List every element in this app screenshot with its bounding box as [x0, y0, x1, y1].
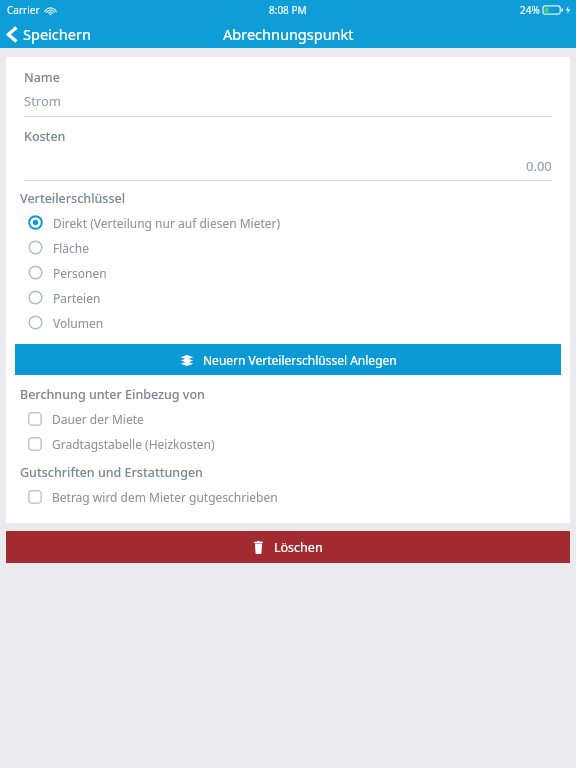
button[interactable]: Gradtagstabelle (Heizkosten) — [6, 431, 570, 456]
button[interactable]: Speichern — [0, 20, 101, 48]
staticText: Verteilerschlüssel — [20, 190, 126, 207]
staticText: Löschen — [274, 539, 323, 556]
staticText: Dauer der Miete — [52, 411, 144, 427]
button[interactable]: Löschen — [6, 531, 570, 563]
button[interactable]: 0.00 — [6, 157, 570, 175]
staticText: Direkt (Verteilung nur auf diesen Mieter… — [53, 215, 281, 231]
staticText: Speichern — [23, 24, 91, 44]
staticText: Betrag wird dem Mieter gutgeschrieben — [52, 489, 278, 505]
staticText: 24% — [520, 3, 540, 17]
button[interactable]: Betrag wird dem Mieter gutgeschrieben — [6, 484, 570, 509]
button[interactable]: Fläche — [6, 235, 570, 260]
button[interactable]: Volumen — [6, 310, 570, 335]
staticText: Volumen — [53, 315, 104, 331]
staticText: Name — [24, 69, 60, 86]
button[interactable]: Dauer der Miete — [6, 406, 570, 431]
staticText: Kosten — [24, 128, 66, 145]
staticText: Neuern Verteilerschlüssel Anlegen — [203, 352, 397, 368]
staticText: Gradtagstabelle (Heizkosten) — [52, 436, 215, 452]
staticText: Personen — [53, 265, 107, 281]
staticText: Berchnung unter Einbezug von — [20, 386, 205, 403]
staticText: Abrechnungspunkt — [223, 24, 354, 44]
button[interactable]: Neuern Verteilerschlüssel Anlegen — [15, 344, 561, 375]
staticText: Parteien — [53, 290, 101, 306]
button[interactable]: Parteien — [6, 285, 570, 310]
button[interactable]: Strom — [6, 92, 570, 110]
staticText: Strom — [24, 92, 61, 110]
staticText: 0.00 — [526, 157, 552, 175]
staticText: Gutschriften und Erstattungen — [20, 464, 203, 481]
staticText: Fläche — [53, 240, 90, 256]
staticText: 8:08 PM — [269, 3, 307, 17]
button[interactable]: Direkt (Verteilung nur auf diesen Mieter… — [6, 210, 570, 235]
staticText: Carrier — [7, 3, 40, 17]
button[interactable]: Personen — [6, 260, 570, 285]
